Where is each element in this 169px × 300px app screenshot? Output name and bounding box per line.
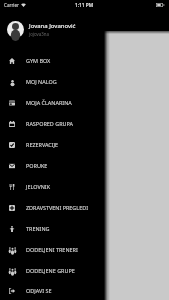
staticText: DODELJENI TRENERI [26,246,78,253]
button[interactable]: Jovana Jovanović [0,19,169,39]
button[interactable]: ODJAVI SE [0,281,169,300]
button[interactable]: TRENING [0,218,169,239]
staticText: ZDRAVSTVENI PREGLEDI [26,204,89,211]
staticText: GYM BOX [26,57,51,64]
staticText: 1:11 PM [75,2,94,9]
staticText: RASPORED GRUPA [26,120,73,127]
button[interactable]: ZDRAVSTVENI PREGLEDI [0,197,169,218]
staticText: MOJA ČLANARINA [26,99,72,106]
button[interactable]: JELOVNIK [0,176,169,197]
button[interactable]: MOJA ČLANARINA [0,92,169,113]
button[interactable]: RASPORED GRUPA [0,113,169,134]
staticText: jojova3na [29,31,49,37]
button[interactable]: DODELJENI TRENERI [0,239,169,260]
button[interactable]: MOJ NALOG [0,71,169,92]
button[interactable]: Close navigation drawer [104,31,169,300]
button[interactable]: DODELJENE GRUPE [0,260,169,281]
staticText: Jovana Jovanović [29,22,76,30]
button[interactable]: PORUKE [0,155,169,176]
staticText: TRENING [26,225,50,232]
staticText: JELOVNIK [26,183,51,190]
staticText: PORUKE [26,162,48,169]
staticText: DODELJENE GRUPE [26,267,75,274]
button[interactable]: GYM BOX [0,50,169,71]
button[interactable]: REZERVACIJE [0,134,169,155]
staticText: REZERVACIJE [26,141,59,148]
staticText: Carrier [4,2,19,8]
staticText: MOJ NALOG [26,78,57,85]
staticText: ODJAVI SE [26,287,52,294]
